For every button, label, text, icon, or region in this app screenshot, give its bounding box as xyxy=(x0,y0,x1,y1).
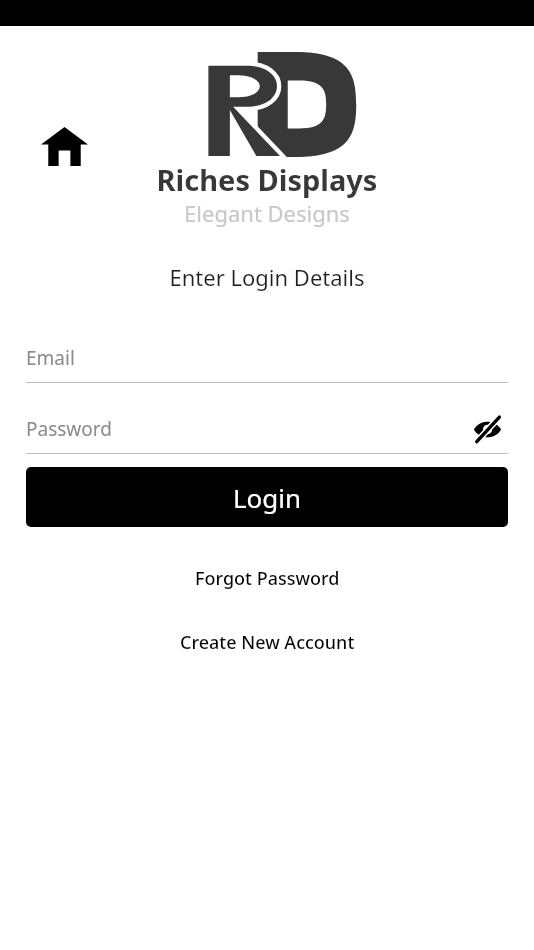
staticText: Email xyxy=(26,345,75,371)
staticText: Enter Login Details xyxy=(0,262,534,292)
staticText: Login xyxy=(233,480,302,515)
button[interactable]: Password xyxy=(26,405,508,453)
button[interactable]: Login xyxy=(26,467,508,527)
button[interactable]: Email xyxy=(26,334,508,382)
button[interactable]: Create New Account xyxy=(0,628,534,656)
button[interactable]: Show password xyxy=(466,408,508,450)
staticText: Elegant Designs xyxy=(0,198,534,228)
staticText: Riches Displays xyxy=(0,160,534,199)
button[interactable]: Forgot Password xyxy=(0,564,534,592)
staticText: Create New Account xyxy=(180,630,355,655)
staticText: Forgot Password xyxy=(195,566,340,591)
staticText: Password xyxy=(26,416,112,442)
button[interactable]: Home xyxy=(32,114,96,178)
